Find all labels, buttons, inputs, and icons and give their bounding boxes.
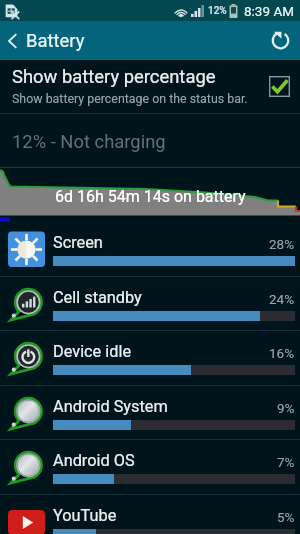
staticText: 5%	[277, 509, 295, 525]
staticText: Battery	[26, 30, 85, 52]
button[interactable]: Cell standby	[0, 277, 300, 331]
button[interactable]: Android System	[0, 386, 300, 440]
staticText: 16%	[269, 345, 295, 361]
staticText: Device idle	[53, 342, 132, 361]
staticText: 7%	[277, 454, 295, 470]
button[interactable]: Device idle	[0, 331, 300, 385]
staticText: 12% - Not charging	[12, 131, 166, 153]
button[interactable]: Show battery percentage	[0, 60, 300, 113]
button[interactable]: Screen	[0, 222, 300, 276]
staticText: Show battery percentage on the status ba…	[12, 91, 248, 106]
button[interactable]: YouTube	[0, 495, 300, 534]
staticText: Android System	[53, 397, 168, 416]
button[interactable]: Refresh	[261, 21, 300, 60]
staticText: Show battery percentage	[12, 66, 216, 88]
staticText: 28%	[269, 236, 295, 252]
staticText: 24%	[269, 291, 295, 307]
staticText: 6d 16h 54m 14s on battery	[55, 187, 246, 206]
staticText: 8:39 AM	[244, 3, 294, 19]
staticText: Android OS	[53, 451, 135, 470]
button[interactable]: Battery	[0, 21, 135, 60]
staticText: YouTube	[53, 506, 117, 525]
staticText: 12%	[208, 5, 227, 17]
staticText: Screen	[53, 233, 103, 252]
staticText: 9%	[277, 400, 295, 416]
staticText: Cell standby	[53, 288, 142, 307]
button[interactable]: Android OS	[0, 440, 300, 494]
